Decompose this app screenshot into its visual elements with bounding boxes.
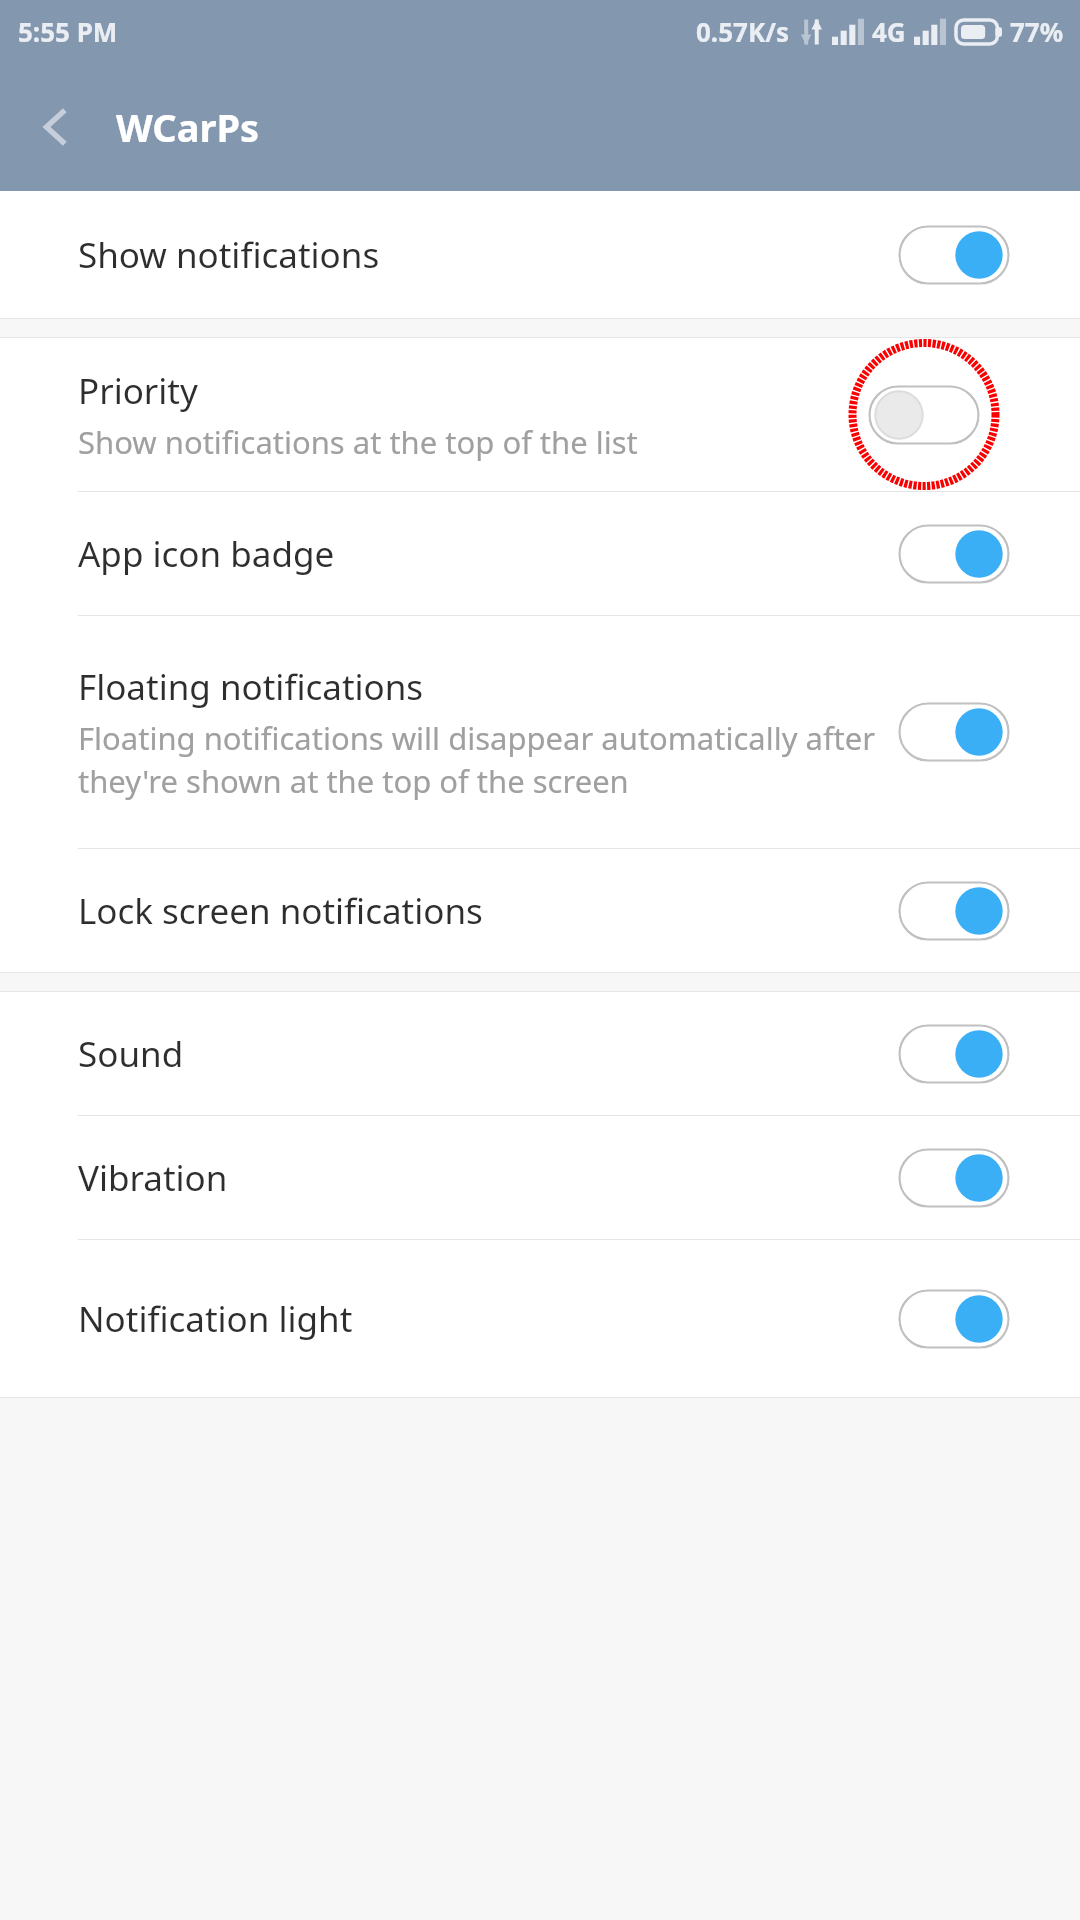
button[interactable]: Switch on — [898, 1289, 1010, 1349]
staticText: 5:55 PM — [18, 14, 118, 49]
staticText: 0.57K/s — [696, 14, 790, 49]
button[interactable]: Notification light — [0, 1240, 1080, 1397]
button[interactable]: Vibration — [0, 1116, 1080, 1239]
button[interactable]: Switch on — [898, 1148, 1010, 1208]
staticText: Vibration — [78, 1154, 228, 1202]
button[interactable]: Priority — [0, 338, 1080, 491]
button[interactable]: App icon badge — [0, 492, 1080, 615]
button[interactable]: Lock screen notifications — [0, 849, 1080, 972]
button[interactable]: Floating notifications — [0, 616, 1080, 848]
button[interactable]: Switch on — [898, 1024, 1010, 1084]
staticText: Notification light — [78, 1295, 353, 1343]
staticText: Priority — [78, 367, 198, 415]
button[interactable]: Show notifications — [0, 191, 1080, 318]
staticText: 4G — [872, 14, 906, 49]
button[interactable]: Switch on — [898, 702, 1010, 762]
staticText: App icon badge — [78, 530, 335, 578]
button[interactable]: Switch off — [868, 385, 980, 445]
staticText: Sound — [78, 1030, 184, 1078]
staticText: Floating notifications — [78, 663, 424, 711]
staticText: WCarPs — [116, 101, 260, 153]
button[interactable]: Sound — [0, 992, 1080, 1115]
button[interactable]: Back — [18, 89, 94, 165]
button[interactable]: Switch on — [898, 881, 1010, 941]
staticText: Floating notifications will disappear au… — [78, 717, 880, 802]
staticText: Lock screen notifications — [78, 887, 483, 935]
staticText: Show notifications at the top of the lis… — [78, 421, 638, 463]
staticText: Show notifications — [78, 231, 380, 279]
button[interactable]: Switch on — [898, 524, 1010, 584]
staticText: 77% — [1010, 14, 1064, 49]
button[interactable]: Switch on — [898, 225, 1010, 285]
